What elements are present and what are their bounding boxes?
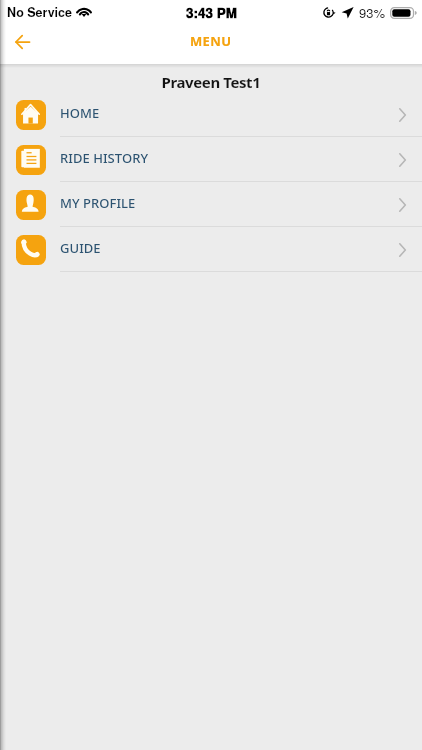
staticText: HOME xyxy=(60,104,100,122)
staticText: MY PROFILE xyxy=(60,194,136,212)
staticText: 3:43 PM xyxy=(186,3,238,22)
staticText: 93% xyxy=(359,3,386,22)
staticText: No Service xyxy=(7,3,72,21)
button[interactable]: GUIDE xyxy=(0,227,422,272)
staticText: GUIDE xyxy=(60,239,101,257)
staticText: MENU xyxy=(190,32,232,50)
button[interactable]: HOME xyxy=(0,92,422,137)
staticText: RIDE HISTORY xyxy=(60,149,149,167)
button[interactable]: MY PROFILE xyxy=(0,182,422,227)
button[interactable]: RIDE HISTORY xyxy=(0,137,422,182)
button[interactable]: Back xyxy=(9,29,35,55)
staticText: Praveen Test1 xyxy=(0,72,422,92)
